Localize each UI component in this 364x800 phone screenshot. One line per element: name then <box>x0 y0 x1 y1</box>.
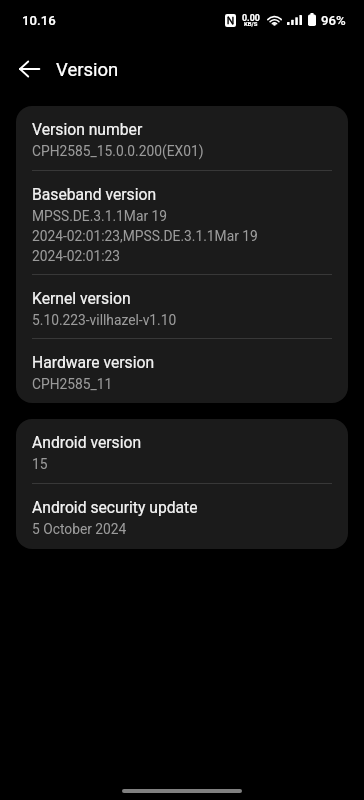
staticText: CPH2585_15.0.0.200(EX01) <box>32 140 204 160</box>
staticText: 2024-02:01:23,MPSS.DE.3.1.1Mar 19 <box>32 225 258 245</box>
staticText: Version number <box>32 120 143 138</box>
button[interactable]: Version number <box>16 106 348 171</box>
staticText: Hardware version <box>32 353 155 371</box>
staticText: Baseband version <box>32 185 157 203</box>
staticText: 15 <box>32 453 48 473</box>
button[interactable]: Kernel version <box>16 275 348 339</box>
button[interactable]: Android version <box>16 419 348 484</box>
staticText: 96% <box>321 13 346 28</box>
staticText: Kernel version <box>32 289 131 307</box>
staticText: Version <box>56 59 119 81</box>
staticText: Android version <box>32 433 142 451</box>
staticText: 10.16 <box>22 13 56 28</box>
button[interactable]: Baseband version <box>16 171 348 275</box>
staticText: CPH2585_11 <box>32 373 113 393</box>
staticText: 5 October 2024 <box>32 518 127 538</box>
staticText: MPSS.DE.3.1.1Mar 19 <box>32 205 167 225</box>
staticText: 5.10.223-villhazel-v1.10 <box>32 309 177 329</box>
staticText: KB/S <box>244 21 258 28</box>
staticText: 2024-02:01:23 <box>32 245 121 265</box>
staticText: 0.00 <box>242 13 260 23</box>
button[interactable]: Hardware version <box>16 339 348 403</box>
staticText: Android security update <box>32 498 198 516</box>
button[interactable]: Back <box>8 48 50 90</box>
button[interactable]: Android security update <box>16 484 348 549</box>
